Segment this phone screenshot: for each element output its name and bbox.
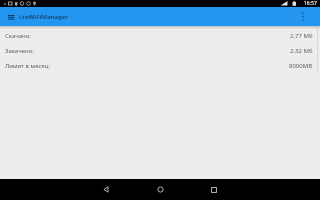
staticText: Закачено: [5, 47, 34, 55]
staticText: 2,77 Мб [290, 32, 313, 40]
button[interactable]: LteWiFiManager [0, 7, 320, 26]
button[interactable] [294, 7, 320, 26]
staticText: 16:57 [304, 0, 317, 7]
button[interactable] [187, 179, 241, 200]
button[interactable]: Лимит в месяц: [0, 58, 320, 73]
staticText: Лимит в месяц: [5, 62, 51, 70]
staticText: Скачано: [5, 32, 31, 40]
button[interactable] [133, 179, 187, 200]
staticText: 2,32 Мб [290, 47, 313, 55]
button[interactable] [79, 179, 133, 200]
button[interactable]: Скачано: [0, 28, 320, 43]
staticText: LteWiFiManager [19, 13, 69, 21]
button[interactable]: Закачено: [0, 43, 320, 58]
staticText: 8000МВ [289, 62, 313, 70]
